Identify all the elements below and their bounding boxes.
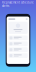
staticText: Replacement schedule alerts [2, 1, 34, 8]
